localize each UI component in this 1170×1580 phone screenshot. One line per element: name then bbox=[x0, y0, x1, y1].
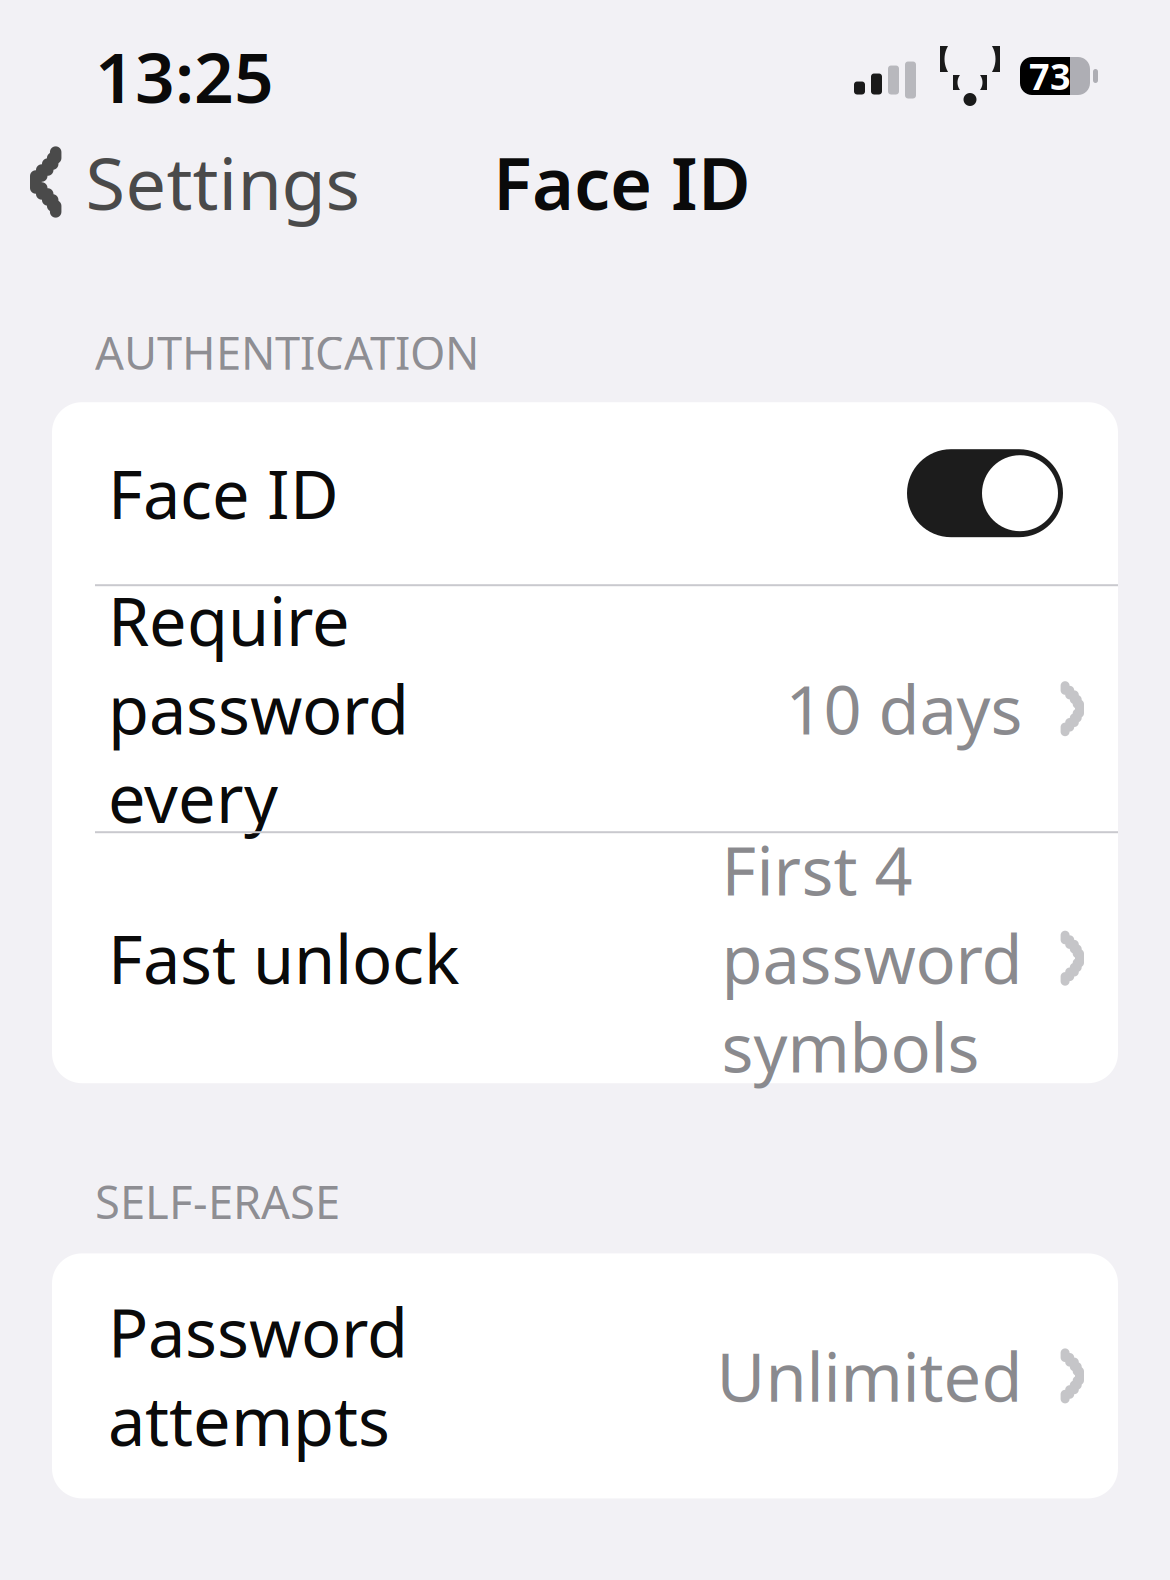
button[interactable]: Settings bbox=[0, 118, 383, 246]
button[interactable]: Password attempts bbox=[52, 1253, 1118, 1498]
staticText: 10 days bbox=[786, 664, 1023, 753]
staticText: 13:25 bbox=[95, 30, 274, 122]
staticText: Face ID bbox=[108, 449, 339, 537]
staticText: Require password every bbox=[108, 576, 409, 841]
staticText: Password attempts bbox=[108, 1287, 408, 1464]
staticText: 73 bbox=[1029, 52, 1071, 100]
staticText: Face ID bbox=[493, 134, 751, 230]
staticText: First 4 password symbols bbox=[722, 825, 1023, 1091]
staticText: Settings bbox=[85, 134, 359, 230]
staticText: AUTHENTICATION bbox=[95, 322, 479, 382]
button[interactable]: Fast unlock bbox=[52, 833, 1118, 1083]
staticText: SELF-ERASE bbox=[95, 1171, 340, 1231]
button[interactable]: Face ID bbox=[52, 402, 1118, 584]
button[interactable]: Require password every bbox=[52, 586, 1118, 831]
staticText: Fast unlock bbox=[108, 914, 460, 1002]
staticText: Unlimited bbox=[717, 1332, 1023, 1420]
